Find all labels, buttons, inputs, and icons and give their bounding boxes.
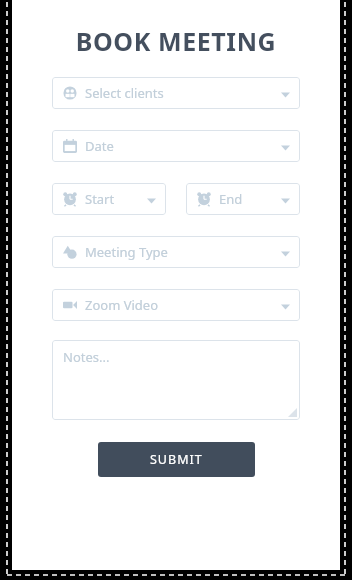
staticText: End xyxy=(219,190,281,208)
button[interactable]: Meeting Type xyxy=(52,236,300,268)
button[interactable]: Select clients xyxy=(52,77,300,109)
staticText: Start xyxy=(85,190,147,208)
button[interactable]: Start xyxy=(52,183,166,215)
staticText: Zoom Video xyxy=(85,296,281,314)
staticText: Notes... xyxy=(63,348,110,366)
button[interactable]: Zoom Video xyxy=(52,289,300,321)
button[interactable]: Date xyxy=(52,130,300,162)
button[interactable]: End xyxy=(186,183,300,215)
button[interactable]: Notes... xyxy=(52,340,300,420)
staticText: Select clients xyxy=(85,84,281,102)
staticText: SUBMIT xyxy=(150,451,203,468)
button[interactable]: SUBMIT xyxy=(98,442,255,477)
staticText: Date xyxy=(85,137,281,155)
staticText: BOOK MEETING xyxy=(12,24,340,58)
staticText: Meeting Type xyxy=(85,243,281,261)
